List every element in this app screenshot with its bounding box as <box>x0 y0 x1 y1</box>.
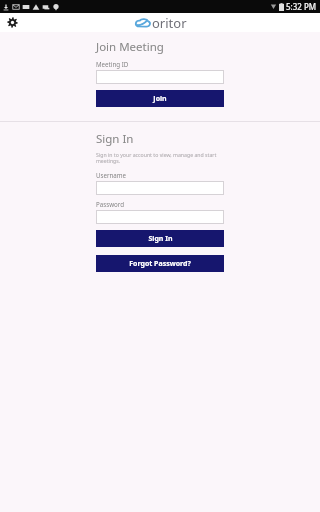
button[interactable]: Join <box>96 90 224 107</box>
button[interactable] <box>96 210 224 224</box>
button[interactable]: Settings <box>4 14 21 31</box>
button[interactable] <box>96 70 224 84</box>
staticText: oritor <box>152 14 187 32</box>
staticText: Sign In <box>96 131 134 147</box>
button[interactable]: Sign In <box>96 230 224 247</box>
staticText: Sign in to your account to view, manage … <box>96 151 224 165</box>
staticText: Meeting ID <box>96 60 129 68</box>
staticText: Username <box>96 171 127 179</box>
button[interactable] <box>96 181 224 195</box>
staticText: Join Meeting <box>96 39 164 55</box>
staticText: Password <box>96 200 124 208</box>
staticText: Forgot Password? <box>129 259 191 269</box>
staticText: 5:32 PM <box>286 1 317 12</box>
staticText: Join <box>153 94 167 104</box>
staticText: Sign In <box>148 234 173 244</box>
button[interactable]: Forgot Password? <box>96 255 224 272</box>
